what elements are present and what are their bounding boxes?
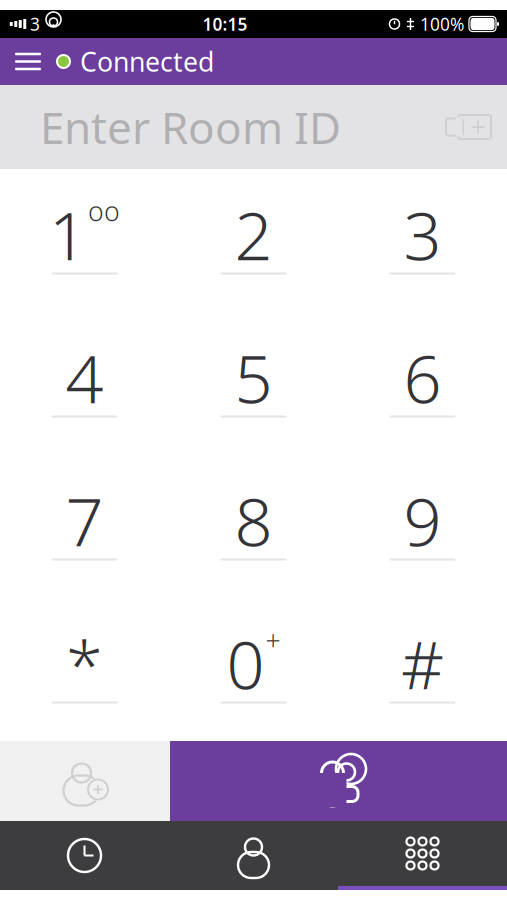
staticText: 2 — [234, 190, 272, 279]
staticText: 7 — [65, 476, 103, 565]
button[interactable]: # — [338, 598, 507, 741]
staticText: + — [265, 622, 280, 658]
button[interactable]: 3 — [338, 169, 507, 312]
staticText: Connected — [80, 44, 214, 79]
button[interactable]: Keypad — [338, 821, 507, 890]
button[interactable]: Recents — [0, 821, 169, 890]
button[interactable]: 2 — [169, 169, 338, 312]
button[interactable]: 5 — [169, 312, 338, 455]
staticText: 100% — [420, 12, 464, 35]
button[interactable]: Call — [170, 741, 507, 821]
button[interactable]: Add contact — [0, 741, 170, 821]
staticText: 5 — [234, 333, 272, 422]
button[interactable]: * — [0, 598, 169, 741]
button[interactable]: 0 — [169, 598, 338, 741]
button[interactable]: Menu — [0, 38, 56, 85]
staticText: Enter Room ID — [40, 98, 341, 156]
staticText: 0 — [226, 619, 264, 708]
button[interactable]: Contacts — [169, 821, 338, 890]
button[interactable]: 1 — [0, 169, 169, 312]
button[interactable]: 9 — [338, 455, 507, 598]
button[interactable]: 8 — [169, 455, 338, 598]
staticText: 3 — [403, 190, 441, 279]
button[interactable]: 7 — [0, 455, 169, 598]
button[interactable]: Delete — [429, 85, 507, 169]
staticText: 3 — [30, 12, 40, 35]
staticText: 8 — [234, 476, 272, 565]
staticText: 1 — [49, 190, 87, 279]
staticText: 6 — [403, 333, 441, 422]
button[interactable]: 6 — [338, 312, 507, 455]
staticText: 9 — [403, 476, 441, 565]
staticText: # — [401, 619, 444, 708]
staticText: * — [66, 619, 103, 708]
button[interactable]: 4 — [0, 312, 169, 455]
staticText: oo — [88, 193, 120, 229]
staticText: 4 — [65, 333, 103, 422]
staticText: 10:15 — [202, 12, 247, 35]
